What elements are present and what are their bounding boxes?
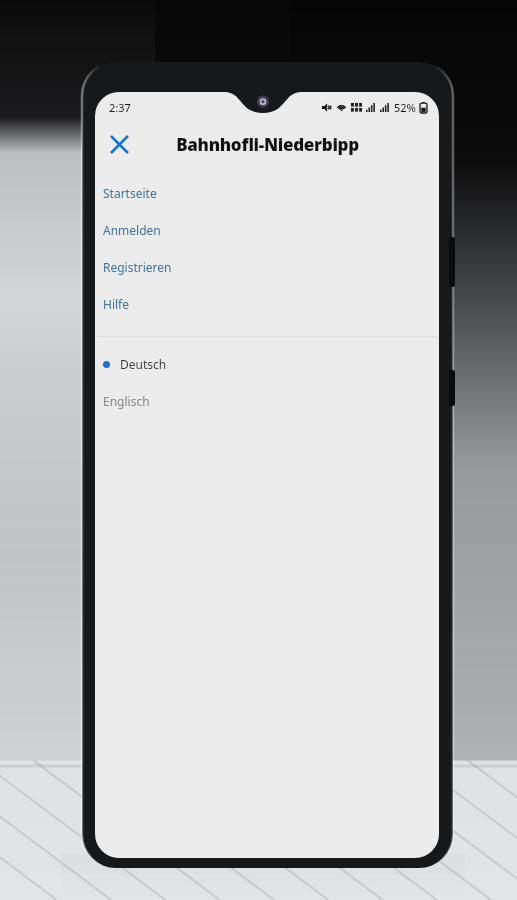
staticText: 2:37 [109,100,131,115]
staticText: Bahnhofli-Niederbipp [176,133,359,156]
button[interactable]: Anmelden [95,211,439,248]
staticText: Anmelden [103,222,161,238]
button[interactable]: Startseite [95,174,439,211]
staticText: Startseite [103,185,157,201]
staticText: Registrieren [103,259,172,275]
staticText: 52% [394,100,416,115]
button[interactable]: Deutsch [95,350,439,378]
button[interactable]: Englisch [95,388,439,414]
button[interactable]: Registrieren [95,248,439,285]
button[interactable]: Hilfe [95,285,439,322]
staticText: Deutsch [120,356,167,372]
staticText: Englisch [103,393,150,409]
button[interactable]: Close [99,124,139,164]
staticText: Hilfe [103,296,129,312]
